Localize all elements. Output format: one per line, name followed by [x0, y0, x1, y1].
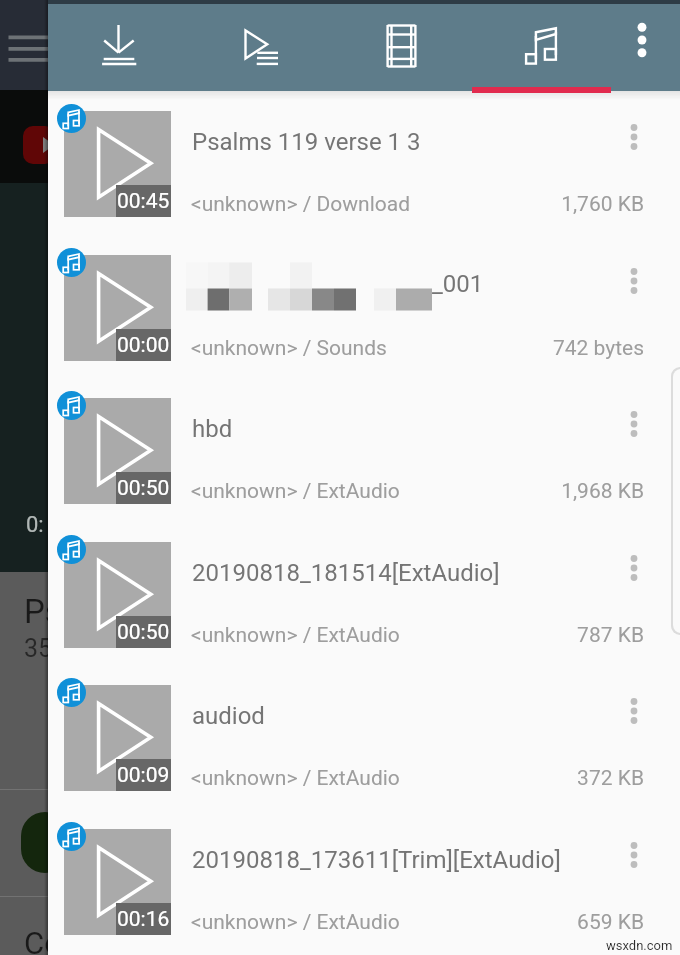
staticText: 20190818_173611[Trim][ExtAudio]	[192, 846, 561, 874]
button[interactable]: Item options	[610, 681, 658, 741]
button[interactable]: 00:50	[48, 378, 680, 522]
staticText: <unknown> / Sounds	[191, 336, 387, 361]
staticText: 00:50	[117, 476, 170, 501]
staticText: 787 KB	[448, 623, 644, 648]
staticText: Co	[24, 925, 62, 955]
button[interactable]: Item options	[610, 107, 658, 167]
button[interactable]: Playlists	[192, 0, 330, 91]
button[interactable]: Item options	[610, 538, 658, 598]
staticText: 00:50	[117, 620, 170, 645]
staticText: 35	[24, 634, 53, 663]
staticText: Psalms 119 verse 1 3	[192, 128, 421, 156]
staticText: 00:16	[117, 907, 170, 932]
staticText: 372 KB	[448, 766, 644, 791]
staticText: 1,760 KB	[448, 192, 644, 217]
staticText: wsxdn.com	[606, 938, 673, 953]
staticText: Ps	[24, 592, 62, 631]
button[interactable]: 00:45	[48, 91, 680, 235]
staticText: 659 KB	[448, 910, 644, 935]
staticText: 1,968 KB	[448, 479, 644, 504]
staticText: 20190818_181514[ExtAudio]	[192, 559, 500, 587]
staticText: _001	[432, 270, 484, 298]
button[interactable]: More options	[604, 0, 680, 91]
button[interactable]: Item options	[610, 825, 658, 885]
staticText: <unknown> / Download	[191, 192, 410, 217]
staticText: <unknown> / ExtAudio	[191, 910, 400, 935]
button[interactable]: 00:00	[48, 235, 680, 379]
staticText: <unknown> / ExtAudio	[191, 623, 400, 648]
staticText: hbd	[192, 415, 233, 443]
staticText: 00:45	[117, 189, 170, 214]
staticText: 742 bytes	[448, 336, 644, 361]
button[interactable]: Item options	[610, 251, 658, 311]
staticText: 00:00	[117, 333, 170, 358]
staticText: 0:	[26, 512, 44, 538]
button[interactable]: Audio	[472, 0, 610, 91]
button[interactable]: Downloads	[50, 0, 188, 91]
button[interactable]: 00:50	[48, 522, 680, 666]
button[interactable]: Item options	[610, 394, 658, 454]
button[interactable]: 00:09	[48, 665, 680, 809]
staticText: audiod	[192, 702, 265, 730]
button[interactable]: 00:16	[48, 809, 680, 953]
staticText: 00:09	[117, 763, 170, 788]
staticText: <unknown> / ExtAudio	[191, 479, 400, 504]
button[interactable]: Videos	[332, 0, 470, 91]
staticText: <unknown> / ExtAudio	[191, 766, 400, 791]
